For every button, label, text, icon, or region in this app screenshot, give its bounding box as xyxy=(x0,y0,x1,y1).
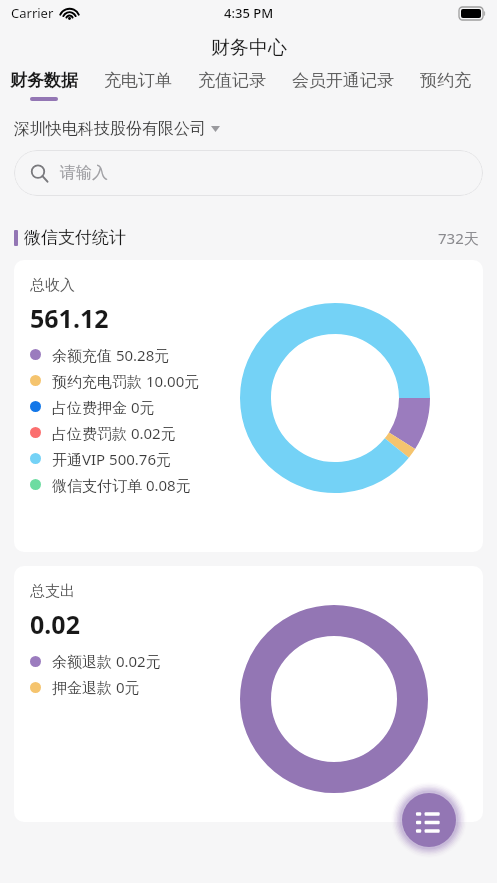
staticText: 财务数据 xyxy=(10,70,78,91)
staticText: 充电订单 xyxy=(104,70,172,91)
button[interactable]: 深圳快电科技股份有限公司 xyxy=(0,119,497,139)
staticText: 占位费罚款 0.02元 xyxy=(52,423,176,443)
staticText: 开通VIP 500.76元 xyxy=(52,449,171,469)
button[interactable]: 列表 xyxy=(402,793,456,847)
staticText: 深圳快电科技股份有限公司 xyxy=(14,119,206,139)
staticText: 充值记录 xyxy=(198,70,266,91)
staticText: Carrier xyxy=(11,4,54,22)
staticText: 占位费押金 0元 xyxy=(52,397,155,417)
button[interactable]: 预约充 xyxy=(407,70,484,91)
staticText: 余额充值 50.28元 xyxy=(52,345,170,365)
staticText: 会员开通记录 xyxy=(292,70,394,91)
staticText: 预约充电罚款 10.00元 xyxy=(52,371,200,391)
button[interactable]: 会员开通记录 xyxy=(279,70,407,91)
staticText: 财务中心 xyxy=(211,36,287,60)
staticText: 押金退款 0元 xyxy=(52,677,140,697)
staticText: 余额退款 0.02元 xyxy=(52,651,161,671)
staticText: 预约充 xyxy=(420,70,471,91)
staticText: 总收入 xyxy=(30,276,75,295)
staticText: 请输入 xyxy=(60,163,108,183)
button[interactable]: 请输入 xyxy=(14,150,483,196)
staticText: 总支出 xyxy=(30,582,75,601)
staticText: 微信支付订单 0.08元 xyxy=(52,475,191,495)
button[interactable]: 财务数据 xyxy=(0,70,91,101)
staticText: 0.02 xyxy=(30,607,80,641)
button[interactable]: 充电订单 xyxy=(91,70,185,91)
button[interactable]: 总支出 xyxy=(14,566,483,822)
staticText: 微信支付统计 xyxy=(24,227,126,248)
staticText: 4:35 PM xyxy=(224,4,274,22)
button[interactable]: 总收入 xyxy=(14,260,483,552)
staticText: 732天 xyxy=(438,228,479,248)
staticText: 561.12 xyxy=(30,301,109,335)
button[interactable]: 充值记录 xyxy=(185,70,279,91)
